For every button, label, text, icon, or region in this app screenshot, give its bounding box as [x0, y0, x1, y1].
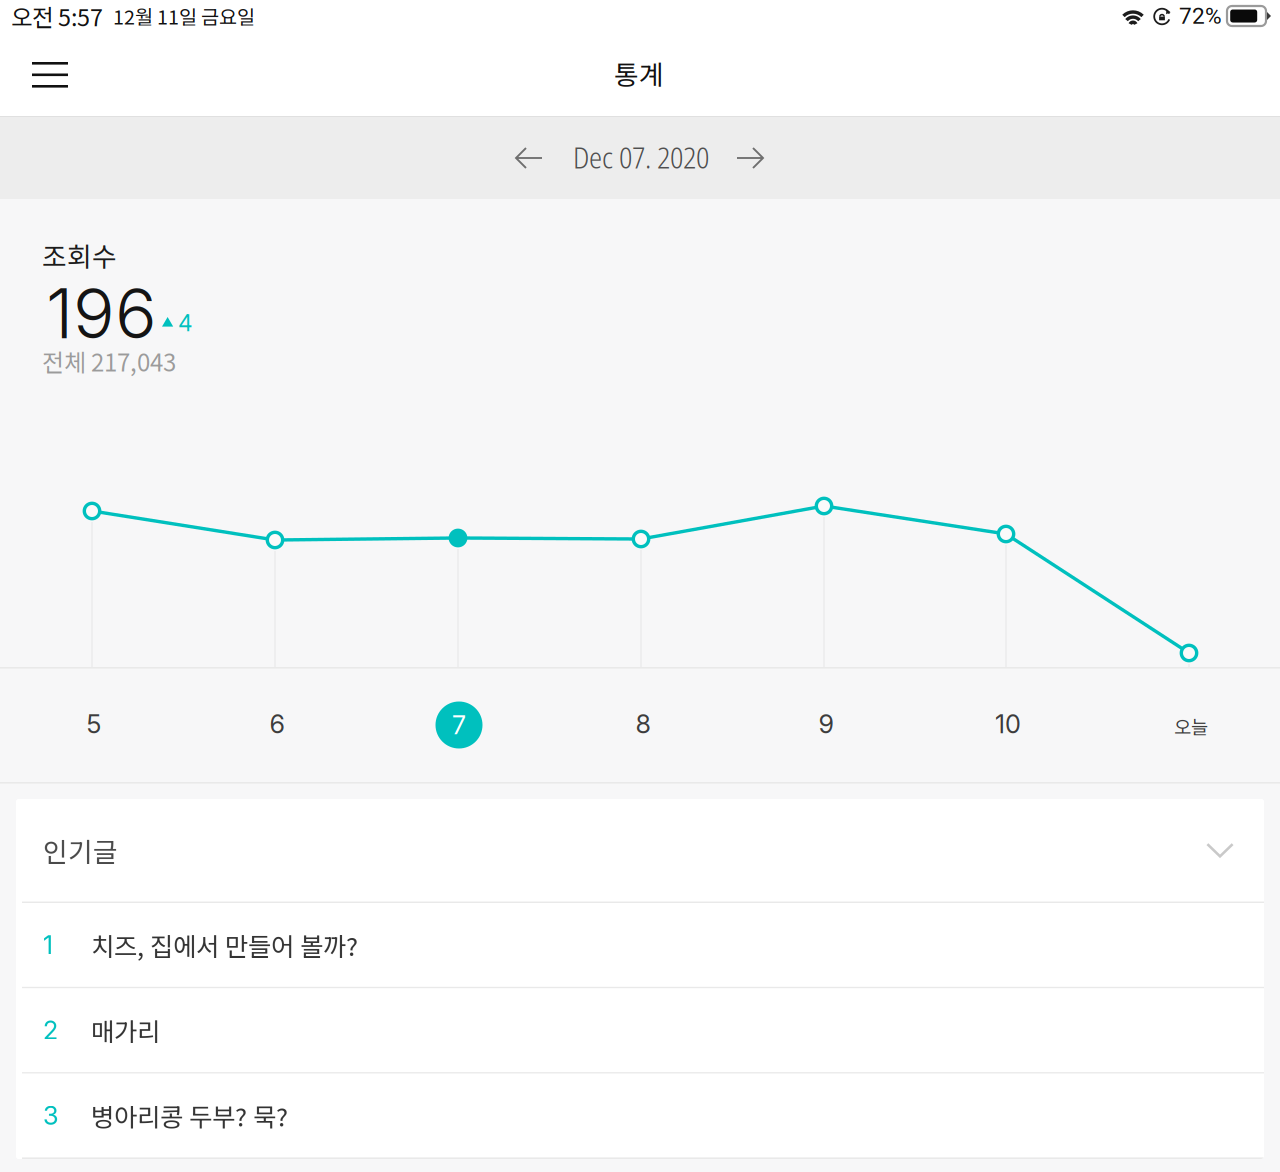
button[interactable]: 7	[435, 701, 482, 748]
button[interactable]: 인기글	[16, 799, 1264, 901]
button[interactable]: 3	[16, 1074, 1264, 1157]
button[interactable]: Next day	[719, 127, 781, 189]
staticText: 인기글	[43, 831, 118, 869]
staticText: 오늘	[1174, 712, 1208, 739]
staticText: 6	[269, 709, 284, 739]
button[interactable]: Previous day	[498, 127, 560, 189]
staticText: 3	[43, 1100, 59, 1131]
button[interactable]: 1	[16, 903, 1264, 987]
staticText: 1	[43, 930, 53, 960]
staticText: 치즈, 집에서 만들어 볼까?	[91, 927, 358, 963]
staticText: 8	[635, 709, 650, 739]
button[interactable]: 2	[16, 988, 1264, 1072]
staticText: 72%	[1179, 3, 1222, 29]
staticText: Dec 07. 2020	[573, 137, 709, 177]
staticText: 196	[46, 271, 157, 355]
staticText: 오전 5:57	[11, 0, 103, 33]
staticText: 병아리콩 두부? 묵?	[91, 1097, 288, 1134]
staticText: 매가리	[91, 1012, 160, 1049]
staticText: 9	[818, 709, 833, 739]
staticText: 7	[452, 710, 466, 740]
button[interactable]: Menu	[18, 43, 82, 107]
staticText: 5	[86, 709, 101, 739]
staticText: 12월 11일 금요일	[113, 2, 255, 30]
staticText: 전체 217,043	[42, 344, 176, 378]
staticText: 통계	[614, 54, 664, 92]
staticText: 4	[178, 309, 193, 337]
staticText: 조회수	[42, 236, 117, 274]
staticText: 2	[43, 1015, 58, 1046]
staticText: 10	[995, 709, 1021, 739]
